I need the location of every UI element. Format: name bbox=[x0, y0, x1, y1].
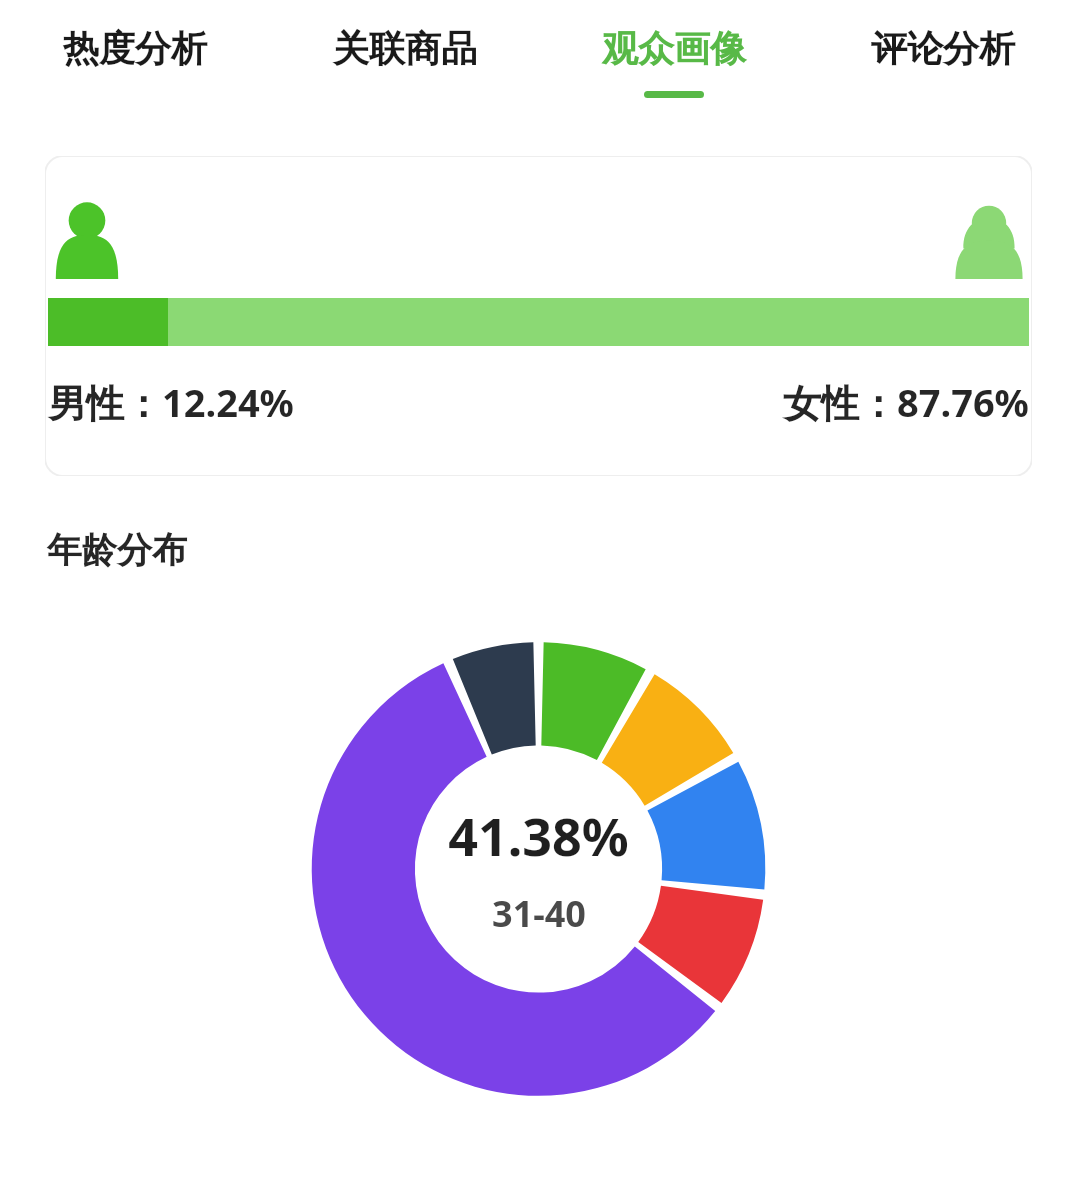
button[interactable]: Male bbox=[45, 156, 1032, 476]
staticText: 41.38% bbox=[448, 800, 629, 871]
button[interactable]: 关联商品 bbox=[270, 0, 539, 130]
button[interactable]: 观众画像 bbox=[539, 0, 808, 130]
staticText: 热度分析 bbox=[63, 26, 207, 71]
staticText: 男性：12.24% bbox=[48, 376, 294, 428]
staticText: 关联商品 bbox=[333, 26, 477, 71]
staticText: 年龄分布 bbox=[47, 528, 187, 572]
other: Male bbox=[48, 199, 126, 279]
staticText: 女性：87.76% bbox=[783, 376, 1029, 428]
button[interactable]: 评论分析 bbox=[808, 0, 1077, 130]
staticText: 观众画像 bbox=[602, 26, 746, 71]
button[interactable]: 热度分析 bbox=[0, 0, 270, 130]
other: Female bbox=[949, 199, 1029, 279]
staticText: 评论分析 bbox=[871, 26, 1015, 71]
staticText: 31-40 bbox=[492, 889, 586, 938]
